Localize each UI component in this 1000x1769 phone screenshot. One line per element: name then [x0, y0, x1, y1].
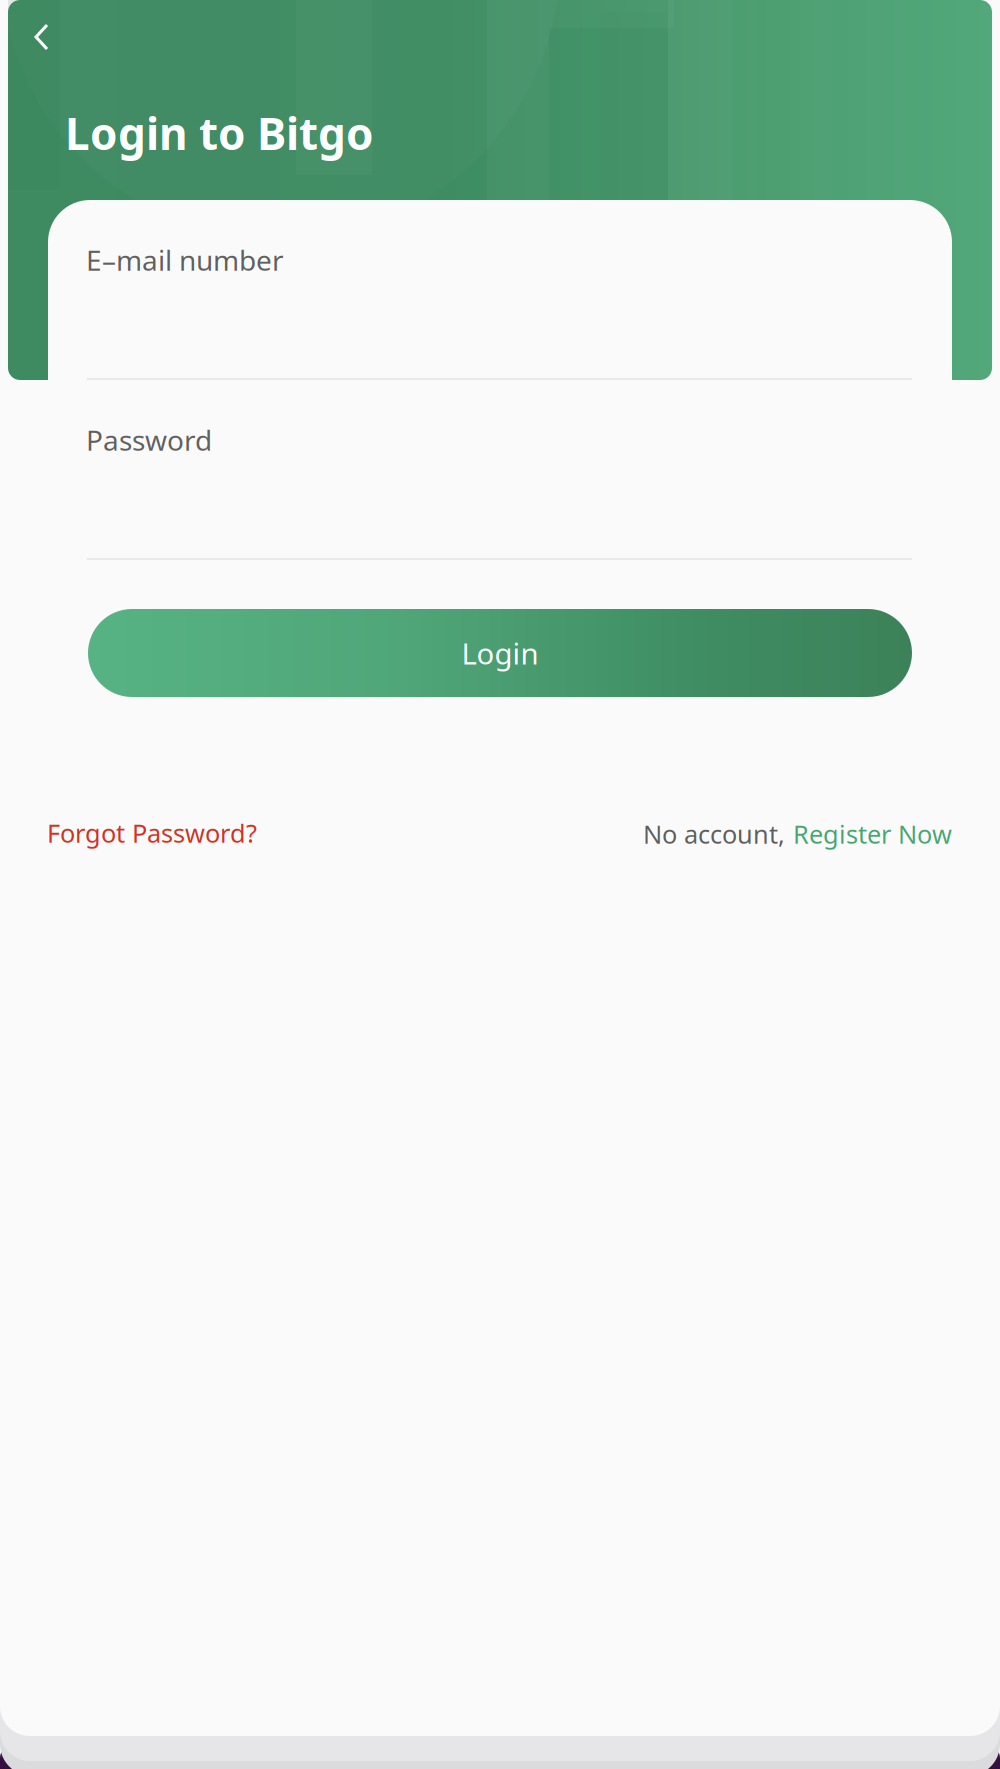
button[interactable]: Password: [86, 402, 911, 560]
button[interactable]: Login: [88, 609, 912, 697]
button[interactable]: Forgot Password?: [47, 810, 327, 856]
staticText: Login to Bitgo: [65, 104, 374, 162]
button[interactable]: Back: [8, 13, 72, 61]
staticText: E–mail number: [86, 241, 284, 279]
staticText: Register Now: [793, 817, 952, 851]
button[interactable]: E–mail number: [86, 222, 911, 380]
staticText: Login: [461, 633, 538, 672]
button[interactable]: Register Now: [793, 817, 952, 851]
staticText: Forgot Password?: [47, 816, 257, 850]
staticText: Password: [86, 421, 212, 459]
staticText: No account,: [643, 817, 785, 851]
